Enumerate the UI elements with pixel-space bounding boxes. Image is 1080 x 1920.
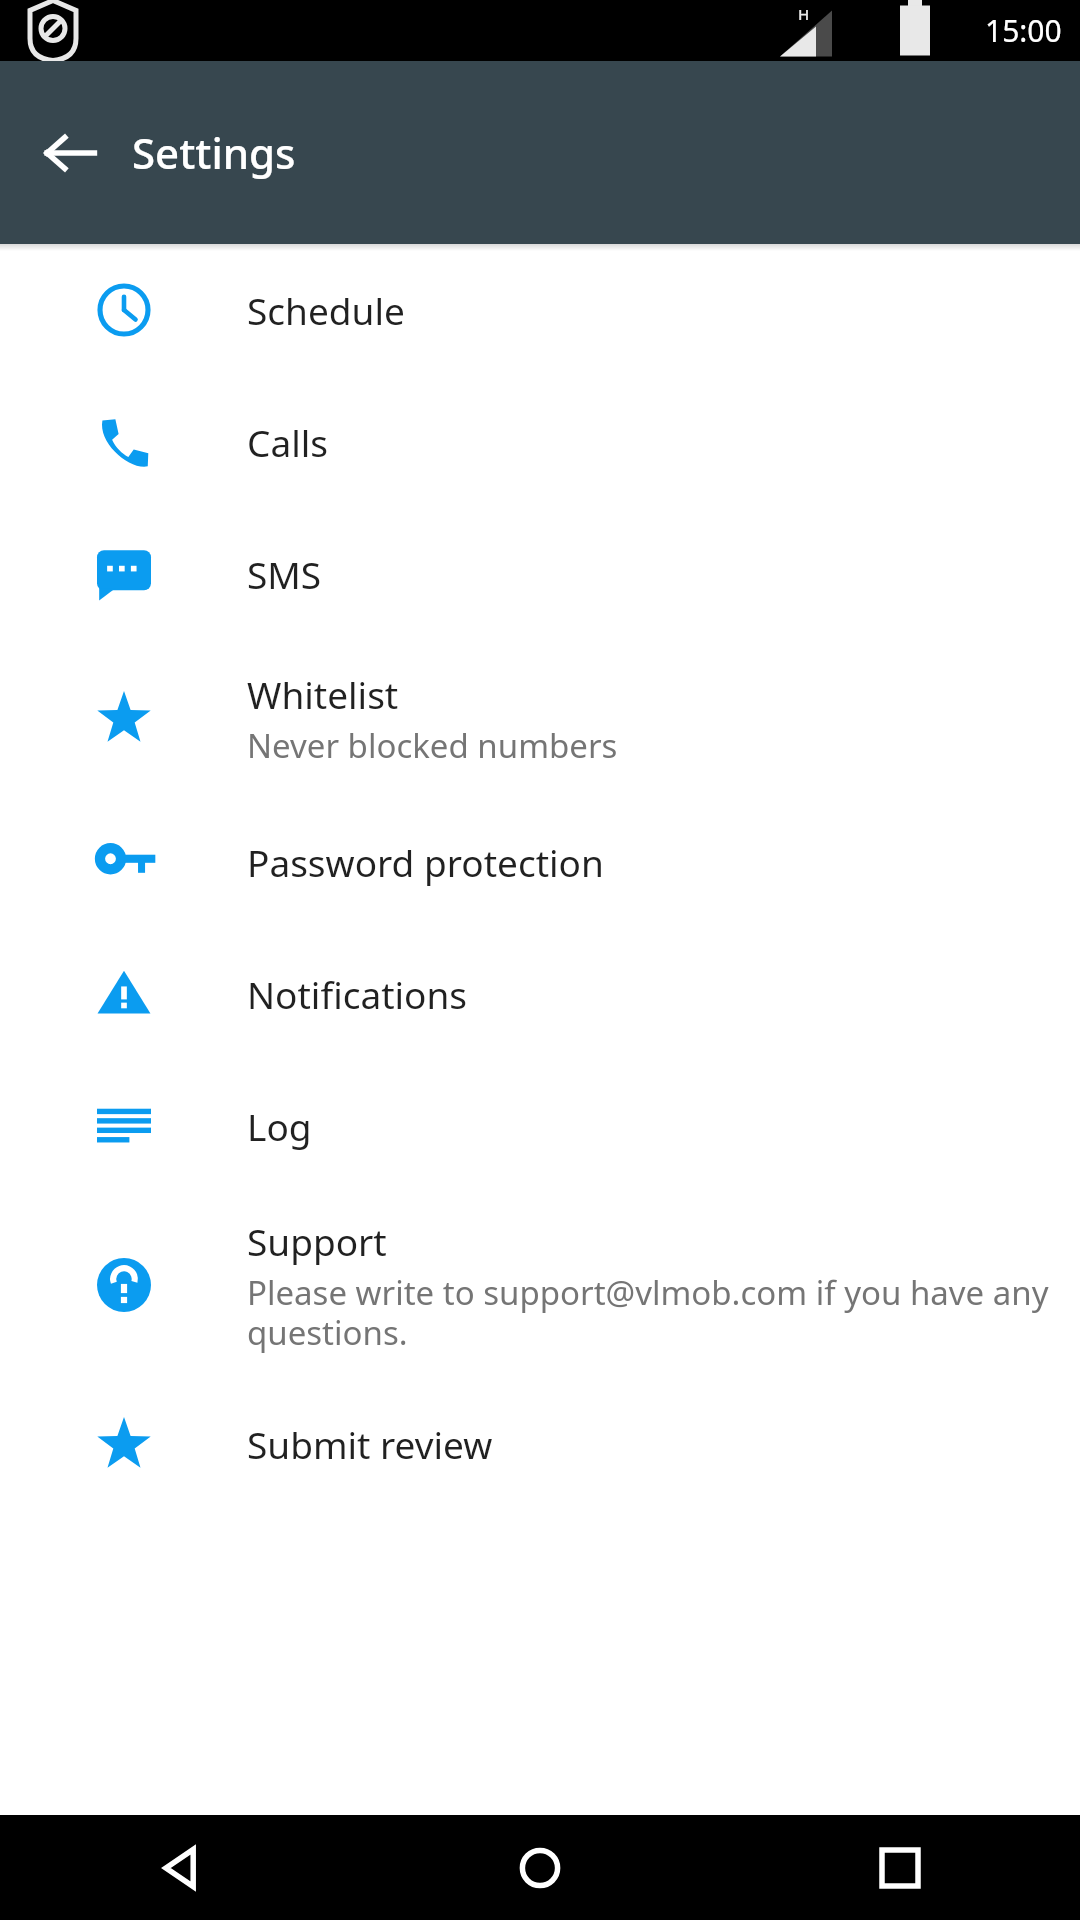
button[interactable]: Schedule xyxy=(0,244,1080,376)
button[interactable]: Notifications xyxy=(0,928,1080,1060)
staticText: Calls xyxy=(247,417,328,467)
button[interactable]: Whitelist xyxy=(0,640,1080,796)
button[interactable]: Submit review xyxy=(0,1378,1080,1510)
staticText: SMS xyxy=(247,549,322,599)
staticText: Support xyxy=(247,1216,387,1266)
button[interactable]: Log xyxy=(0,1060,1080,1192)
staticText: Settings xyxy=(132,124,296,181)
staticText: Log xyxy=(247,1101,312,1151)
staticText: Notifications xyxy=(247,969,468,1019)
button[interactable]: Recent apps xyxy=(720,1815,1080,1920)
button[interactable]: Back xyxy=(0,1815,360,1920)
staticText: Submit review xyxy=(247,1419,493,1469)
staticText: Never blocked numbers xyxy=(247,723,618,768)
staticText: 15:00 xyxy=(985,10,1062,51)
button[interactable]: Password protection xyxy=(0,796,1080,928)
staticText: Password protection xyxy=(247,837,604,887)
button[interactable]: Calls xyxy=(0,376,1080,508)
staticText: H xyxy=(798,4,810,24)
button[interactable]: Support xyxy=(0,1192,1080,1378)
staticText: Schedule xyxy=(247,285,405,335)
staticText: Whitelist xyxy=(247,669,399,719)
button[interactable]: Back xyxy=(35,118,105,188)
button[interactable]: SMS xyxy=(0,508,1080,640)
staticText: Please write to support@vlmob.com if you… xyxy=(247,1270,1056,1355)
button[interactable]: Home xyxy=(360,1815,720,1920)
